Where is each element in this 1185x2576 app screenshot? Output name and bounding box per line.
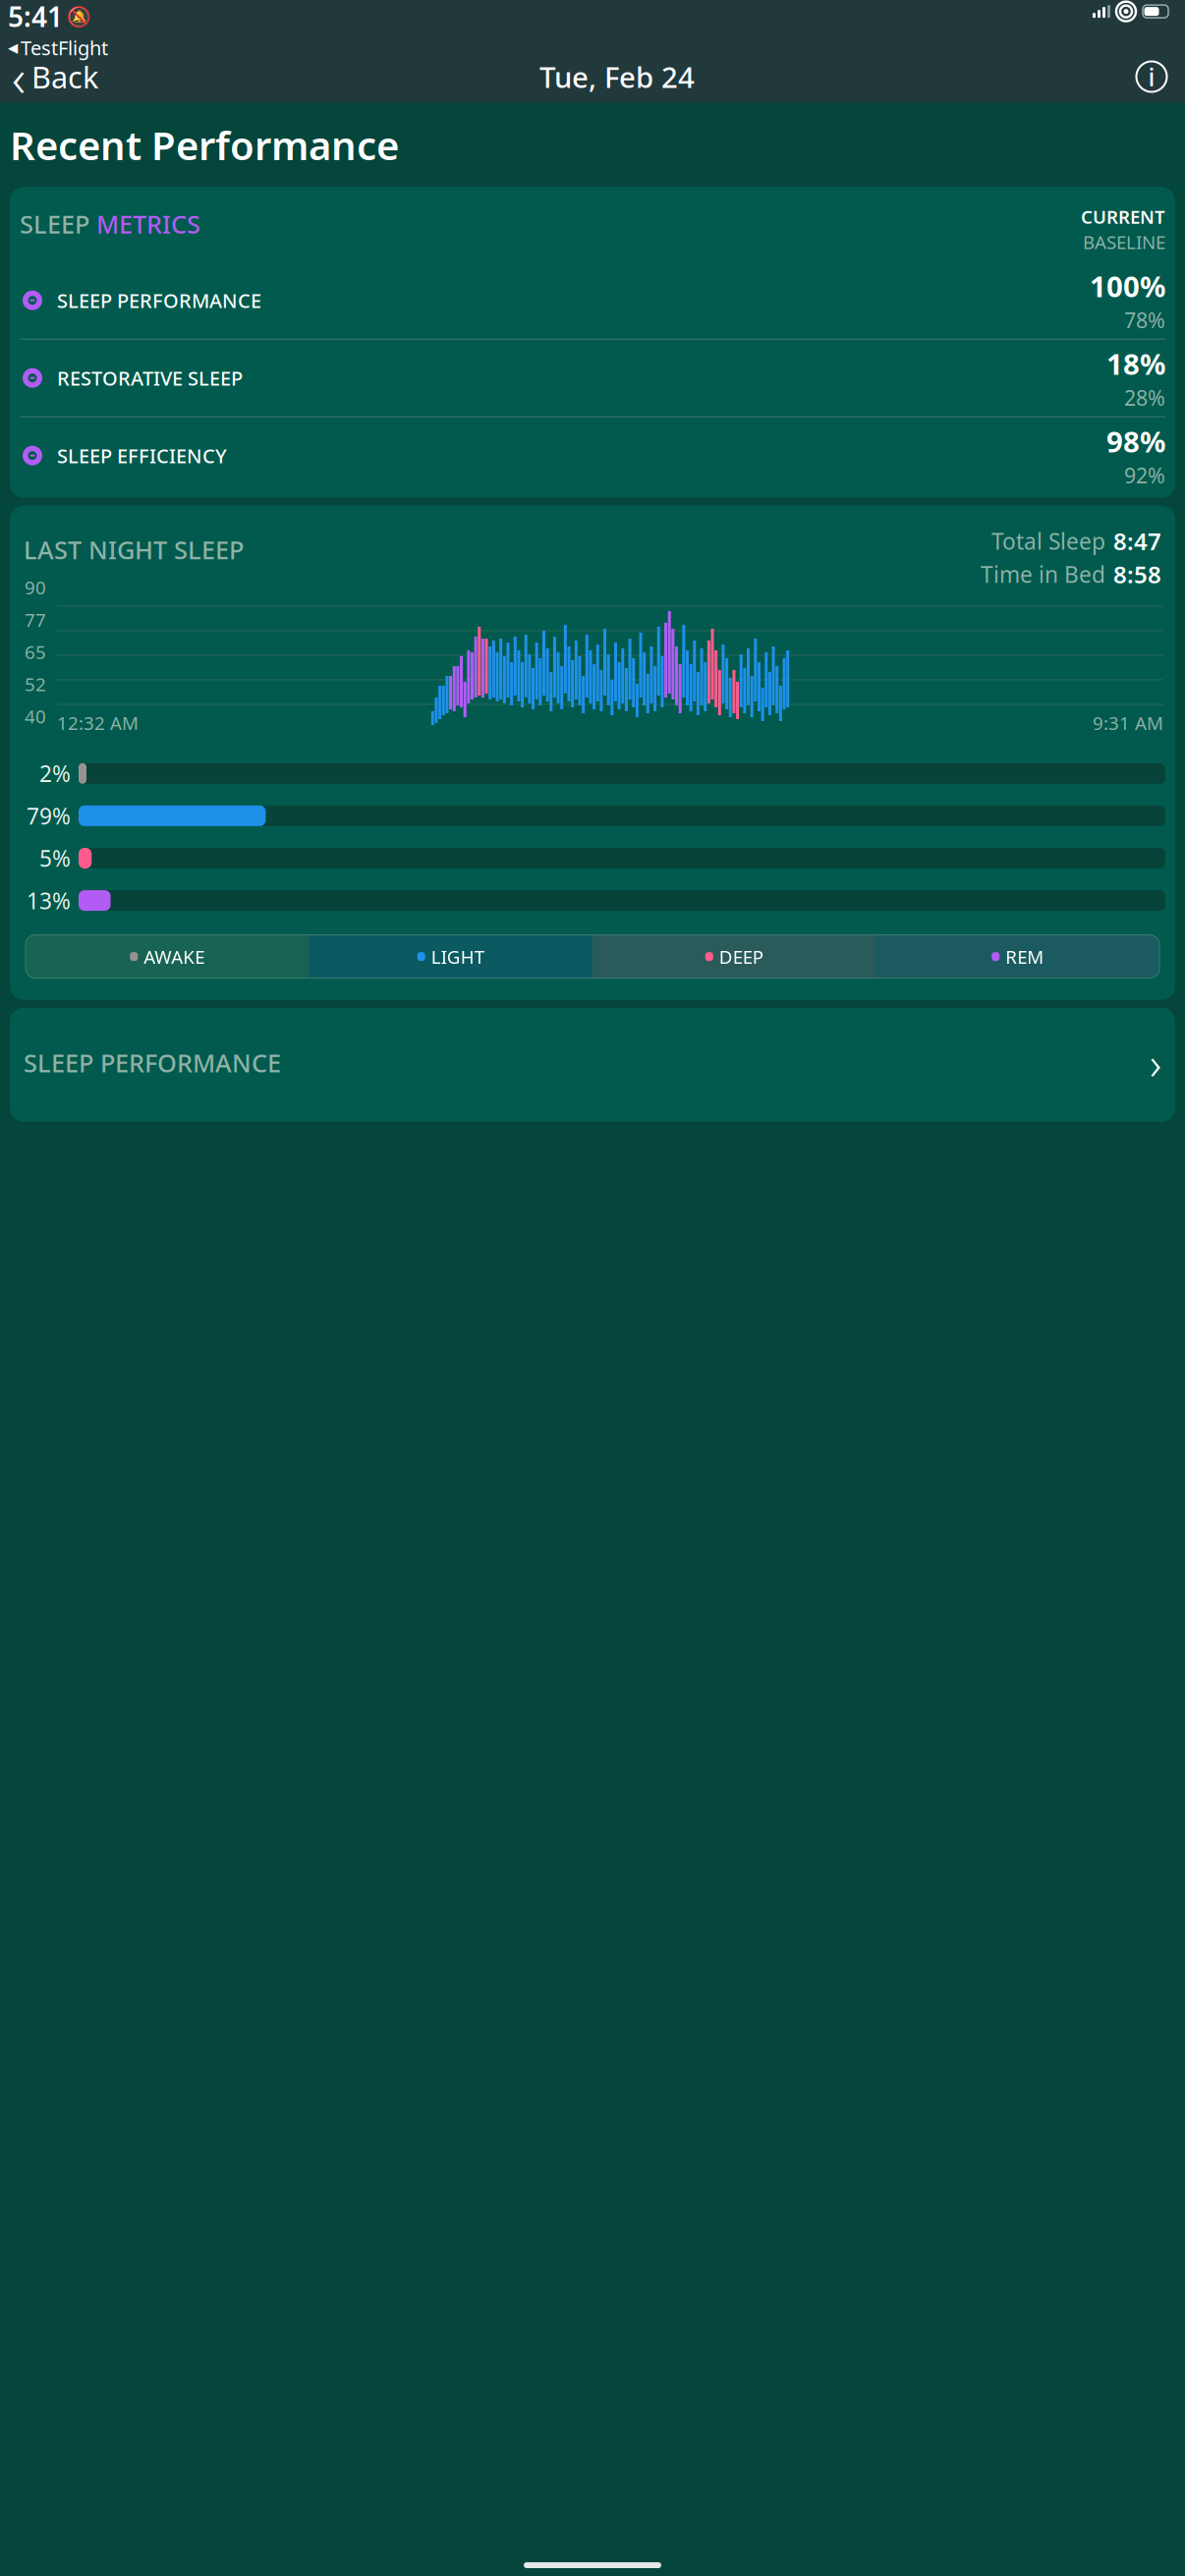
staticText: 79% (27, 801, 71, 831)
staticText: 90 (25, 575, 46, 600)
staticText: AWAKE (144, 944, 205, 969)
staticText: 13% (27, 886, 71, 915)
staticText: 9:31 AM (1093, 711, 1163, 735)
staticText: › (1150, 1033, 1161, 1092)
button[interactable]: LIGHT (309, 935, 592, 978)
staticText: LAST NIGHT SLEEP (24, 533, 244, 566)
staticText: 100% (1090, 267, 1165, 305)
button[interactable]: AWAKE (26, 935, 309, 978)
staticText: SLEEP PERFORMANCE (57, 287, 261, 313)
staticText: BASELINE (1083, 230, 1165, 254)
staticText: 2% (39, 759, 71, 788)
staticText: SLEEP PERFORMANCE (24, 1046, 281, 1079)
staticText: 77 (25, 607, 46, 632)
staticText: Back (31, 57, 98, 97)
staticText: DEEP (719, 944, 763, 969)
staticText: 98% (1106, 422, 1165, 460)
staticText: RESTORATIVE SLEEP (57, 365, 243, 391)
staticText: TestFlight (21, 35, 108, 61)
staticText: 5:41 (8, 0, 63, 35)
staticText: 12:32 AM (57, 711, 139, 735)
button[interactable]: SLEEP EFFICIENCY (10, 417, 1175, 494)
staticText: 52 (25, 672, 46, 696)
staticText: i (1148, 60, 1155, 93)
staticText: ◀ (8, 40, 18, 55)
staticText: METRICS (96, 207, 200, 240)
staticText: Recent Performance (10, 119, 399, 171)
staticText: 65 (25, 640, 46, 664)
staticText: Total Sleep (991, 526, 1105, 556)
staticText: 92% (1124, 461, 1165, 489)
staticText: 🔕 (67, 5, 91, 28)
button[interactable]: RESTORATIVE SLEEP (10, 340, 1175, 416)
button[interactable]: ‹ (0, 53, 108, 100)
staticText: 8:47 (1113, 525, 1161, 557)
button[interactable]: Information (1126, 53, 1185, 100)
button[interactable]: DEEP (592, 935, 876, 978)
button[interactable]: REM (876, 935, 1159, 978)
staticText: ‹ (12, 42, 26, 111)
button[interactable]: SLEEP PERFORMANCE (10, 1008, 1175, 1122)
staticText: SLEEP (20, 207, 96, 240)
staticText: Tue, Feb 24 (539, 57, 695, 96)
staticText: 5% (39, 843, 71, 873)
staticText: 28% (1124, 384, 1165, 411)
staticText: REM (1005, 944, 1044, 969)
staticText: Time in Bed (981, 560, 1105, 589)
staticText: 40 (25, 704, 46, 728)
staticText: CURRENT (1081, 204, 1165, 229)
staticText: 18% (1106, 344, 1165, 383)
button[interactable]: SLEEP PERFORMANCE (10, 262, 1175, 339)
staticText: SLEEP EFFICIENCY (57, 442, 227, 469)
staticText: 78% (1124, 306, 1165, 334)
staticText: LIGHT (431, 944, 484, 969)
staticText: 8:58 (1113, 559, 1161, 590)
